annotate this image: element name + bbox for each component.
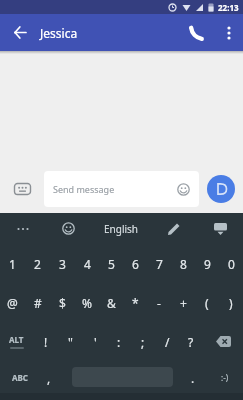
- button[interactable]: 3: [50, 244, 75, 283]
- staticText: 1: [9, 256, 16, 272]
- button[interactable]: English: [91, 213, 151, 244]
- button[interactable]: 8: [171, 244, 195, 283]
- button[interactable]: [207, 175, 235, 203]
- staticText: 3: [59, 256, 66, 272]
- button[interactable]: [197, 213, 243, 244]
- button[interactable]: ': [83, 322, 107, 361]
- button[interactable]: /: [155, 322, 179, 361]
- button[interactable]: 9: [195, 244, 219, 283]
- button[interactable]: [45, 213, 91, 244]
- button[interactable]: ALT: [0, 322, 33, 361]
- staticText: .: [191, 370, 195, 386]
- staticText: (: [205, 295, 209, 311]
- button[interactable]: @: [0, 283, 25, 322]
- button[interactable]: 2: [25, 244, 50, 283]
- button[interactable]: [0, 213, 45, 244]
- button[interactable]: ): [219, 283, 243, 322]
- button[interactable]: +: [171, 283, 195, 322]
- button[interactable]: :-): [206, 361, 243, 394]
- staticText: 9: [204, 256, 211, 272]
- staticText: !: [44, 334, 48, 350]
- staticText: ': [94, 334, 97, 350]
- button[interactable]: [215, 14, 243, 51]
- staticText: :: [117, 334, 121, 350]
- button[interactable]: ,: [40, 361, 58, 394]
- staticText: 22:13: [218, 2, 239, 13]
- button[interactable]: [151, 213, 197, 244]
- staticText: 6: [132, 256, 139, 272]
- button[interactable]: Send message: [44, 171, 199, 207]
- staticText: Jessica: [40, 25, 78, 41]
- staticText: &: [107, 295, 116, 311]
- button[interactable]: %: [75, 283, 99, 322]
- button[interactable]: 5: [99, 244, 123, 283]
- button[interactable]: 0: [219, 244, 243, 283]
- staticText: 8: [180, 256, 187, 272]
- button[interactable]: [203, 322, 243, 361]
- staticText: *: [132, 295, 139, 311]
- staticText: Send message: [53, 183, 115, 195]
- button[interactable]: -: [147, 283, 171, 322]
- staticText: 2: [34, 256, 41, 272]
- staticText: -: [157, 295, 161, 311]
- staticText: +: [180, 295, 187, 311]
- button[interactable]: [0, 169, 44, 208]
- button[interactable]: .: [180, 361, 206, 394]
- staticText: %: [82, 295, 92, 311]
- button[interactable]: 4: [75, 244, 99, 283]
- staticText: 0: [228, 256, 235, 272]
- staticText: 4: [84, 256, 91, 272]
- staticText: ,: [47, 370, 51, 386]
- button[interactable]: 7: [147, 244, 171, 283]
- button[interactable]: [0, 14, 40, 51]
- staticText: ALT: [9, 334, 24, 345]
- button[interactable]: ?: [179, 322, 203, 361]
- button[interactable]: &: [99, 283, 123, 322]
- staticText: $: [59, 295, 66, 311]
- button[interactable]: *: [123, 283, 147, 322]
- button[interactable]: #: [25, 283, 50, 322]
- staticText: ?: [188, 334, 194, 350]
- button[interactable]: ": [58, 322, 83, 361]
- button[interactable]: !: [33, 322, 58, 361]
- button[interactable]: 1: [0, 244, 25, 283]
- button[interactable]: $: [50, 283, 75, 322]
- staticText: ": [68, 334, 73, 350]
- staticText: ;: [141, 334, 145, 350]
- button[interactable]: (: [195, 283, 219, 322]
- staticText: ): [229, 295, 233, 311]
- staticText: English: [104, 222, 139, 236]
- staticText: @: [7, 295, 18, 311]
- button[interactable]: :: [107, 322, 131, 361]
- button[interactable]: 6: [123, 244, 147, 283]
- staticText: ABC: [12, 372, 28, 383]
- button[interactable]: ;: [131, 322, 155, 361]
- button[interactable]: [179, 14, 215, 51]
- staticText: #: [34, 295, 42, 311]
- staticText: /: [165, 334, 170, 350]
- staticText: :-): [221, 372, 229, 383]
- staticText: 7: [156, 256, 163, 272]
- staticText: 5: [108, 256, 115, 272]
- button[interactable]: ABC: [0, 361, 40, 394]
